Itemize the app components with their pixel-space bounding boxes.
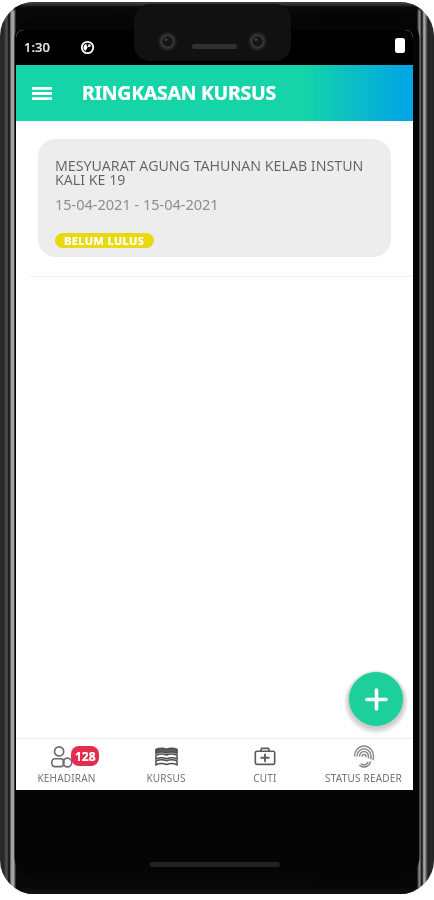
button[interactable]: 128 — [16, 745, 116, 785]
staticText: BELUM LULUS — [64, 233, 145, 248]
staticText: 15-04-2021 - 15-04-2021 — [55, 194, 219, 214]
button[interactable]: KURSUS — [116, 745, 215, 785]
button[interactable]: MESYUARAT AGUNG TAHUNAN KELAB INSTUN KAL… — [38, 139, 391, 257]
staticText: 1:30 — [24, 38, 50, 56]
button[interactable]: Menu — [24, 75, 60, 111]
button[interactable]: CUTI — [215, 745, 314, 785]
staticText: KEHADIRAN — [37, 771, 96, 785]
staticText: KURSUS — [146, 771, 186, 785]
staticText: CUTI — [253, 771, 277, 785]
staticText: MESYUARAT AGUNG TAHUNAN KELAB INSTUN KAL… — [55, 156, 364, 189]
staticText: STATUS READER — [325, 771, 402, 785]
staticText: RINGKASAN KURSUS — [82, 79, 276, 106]
button[interactable]: STATUS READER — [314, 745, 413, 785]
staticText: 128 — [75, 748, 96, 764]
button[interactable]: Add — [349, 672, 403, 726]
